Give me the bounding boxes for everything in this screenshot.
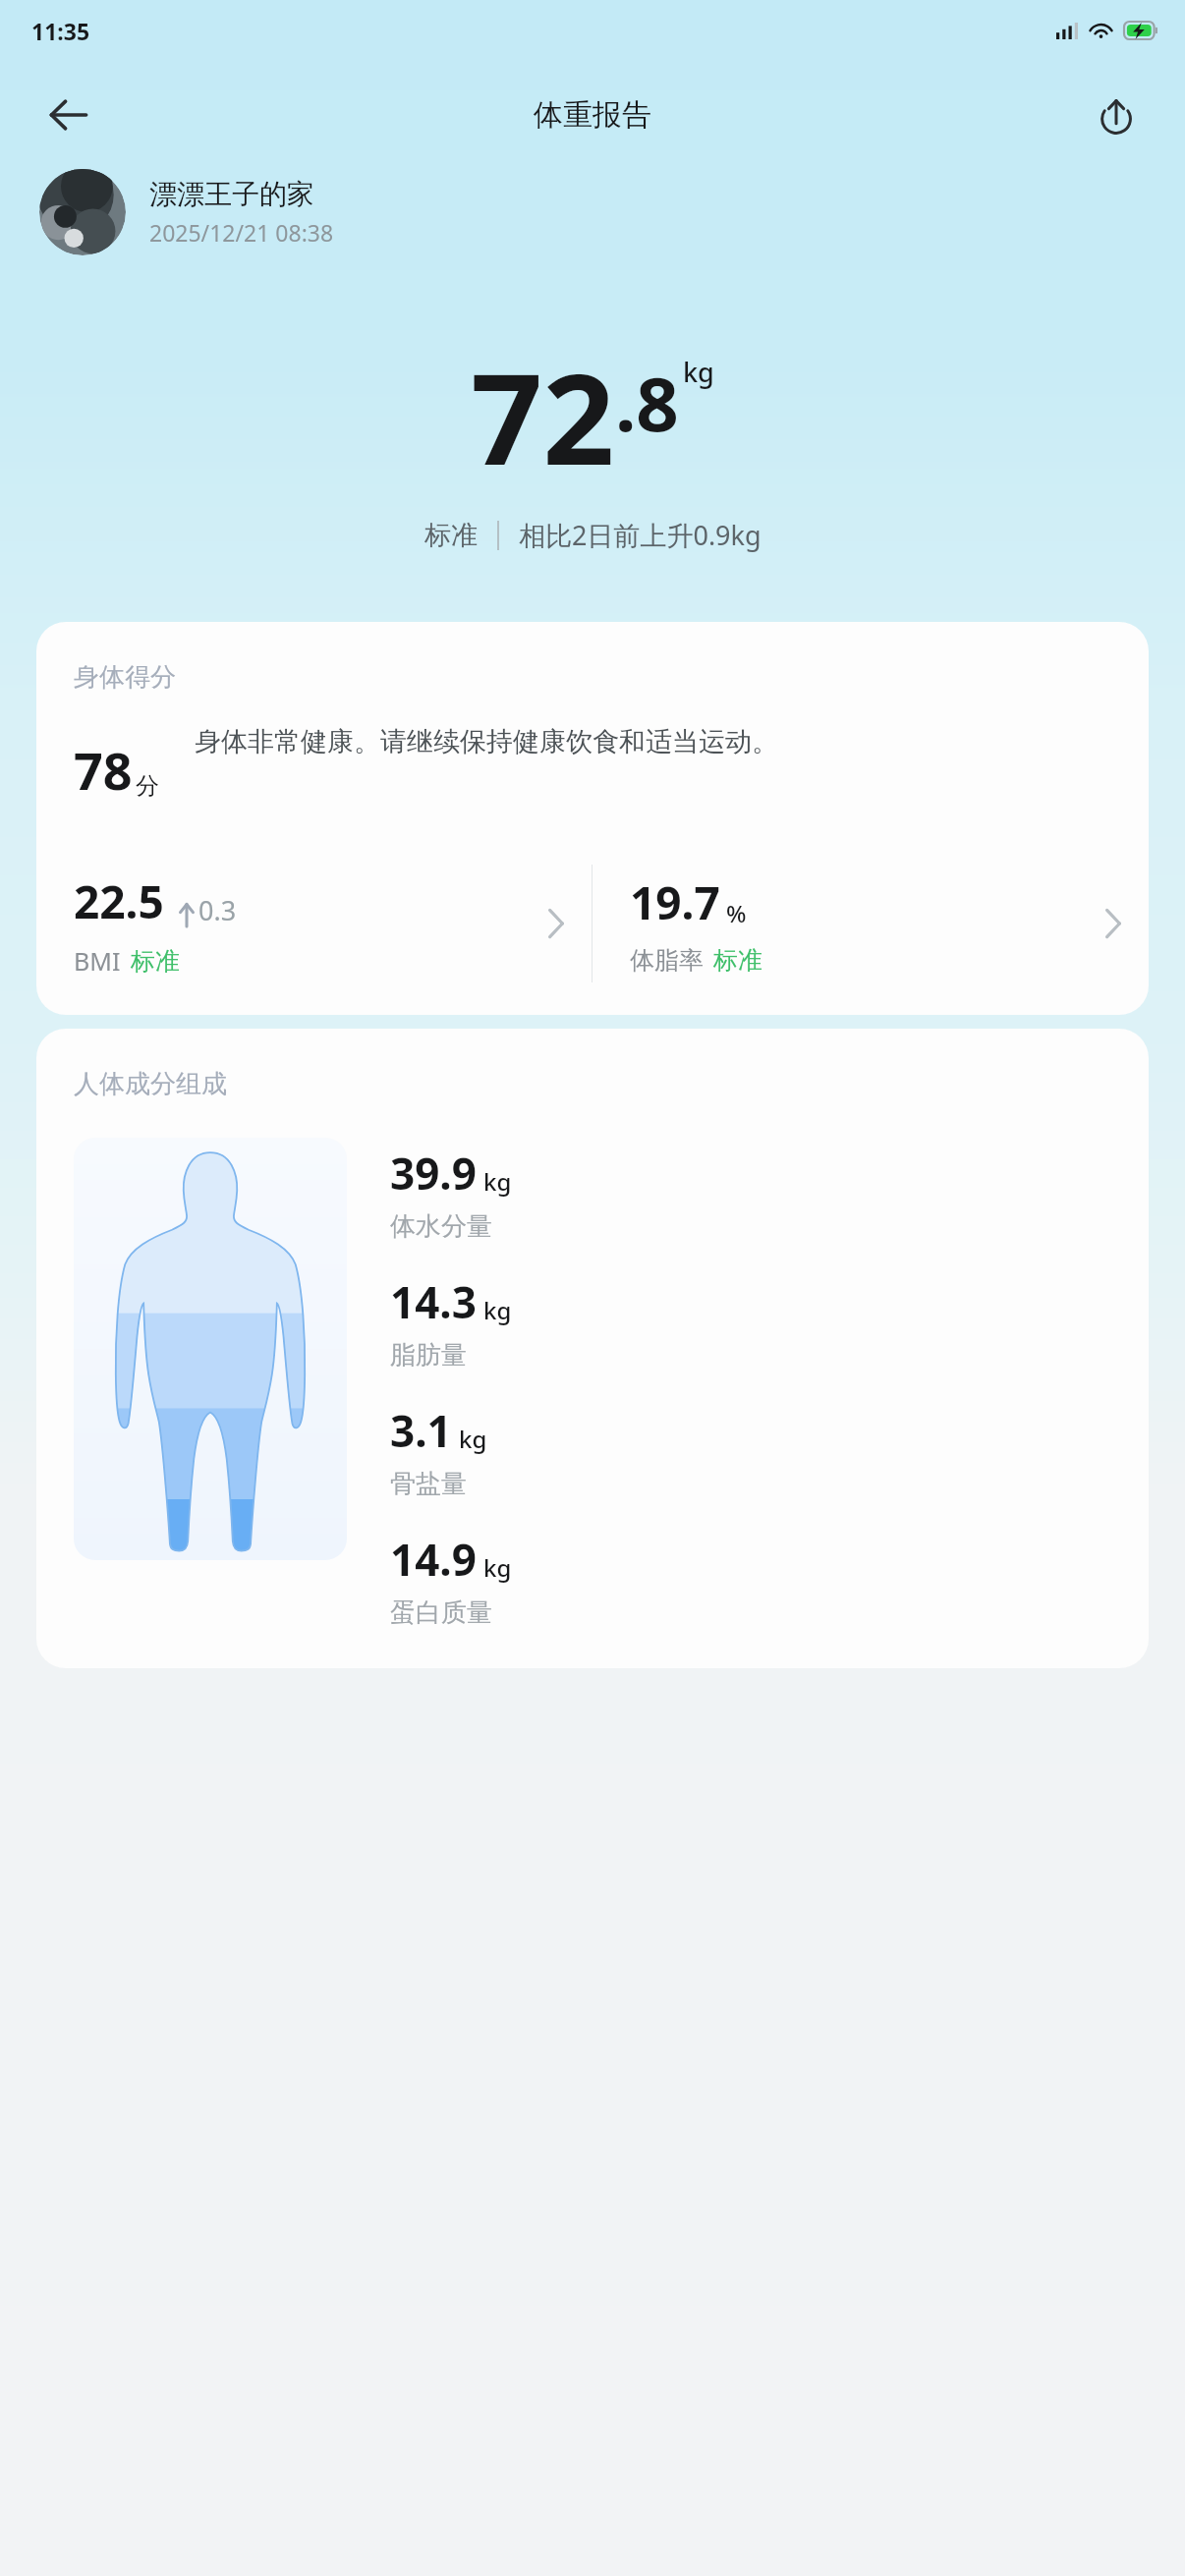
staticText: 体脂率 <box>630 945 704 976</box>
staticText: BMI <box>74 944 121 978</box>
staticText: 0.3 <box>198 892 237 928</box>
staticText: 体水分量 <box>390 1210 492 1243</box>
staticText: 2025/12/21 08:38 <box>149 217 334 248</box>
staticText: kg <box>459 1423 487 1455</box>
staticText: .8 <box>615 352 679 454</box>
staticText: 分 <box>136 771 159 801</box>
staticText: kg <box>483 1294 512 1326</box>
staticText: 体重报告 <box>534 96 651 134</box>
staticText: 19.7 <box>630 871 720 933</box>
staticText: kg <box>483 1165 512 1198</box>
staticText: 78 <box>74 735 133 805</box>
staticText: 3.1 <box>390 1401 452 1460</box>
staticText: 身体非常健康。请继续保持健康饮食和适当运动。 <box>195 725 778 758</box>
staticText: 39.9 <box>390 1144 477 1203</box>
staticText: 脂肪量 <box>390 1339 467 1372</box>
staticText: % <box>726 897 747 929</box>
staticText: 身体得分 <box>74 661 176 694</box>
staticText: 14.9 <box>390 1530 477 1589</box>
button[interactable]: Back <box>33 80 104 150</box>
staticText: 标准 <box>424 519 478 552</box>
staticText: 22.5 <box>74 870 164 932</box>
staticText: 14.3 <box>390 1272 477 1331</box>
staticText: kg <box>483 1551 512 1584</box>
button[interactable]: Share <box>1081 80 1152 150</box>
staticText: 骨盐量 <box>390 1468 467 1500</box>
staticText: 11:35 <box>31 16 90 46</box>
staticText: 相比2日前上升0.9kg <box>519 517 762 553</box>
button[interactable]: 19.7 <box>592 850 1149 997</box>
staticText: kg <box>683 354 714 390</box>
staticText: 72 <box>471 330 615 501</box>
staticText: 标准 <box>131 946 180 977</box>
button[interactable]: 22.5 <box>36 850 592 997</box>
staticText: 漂漂王子的家 <box>149 177 314 211</box>
button[interactable]: 漂漂王子的家 <box>39 169 1146 255</box>
staticText: 蛋白质量 <box>390 1596 492 1629</box>
staticText: 标准 <box>713 945 762 976</box>
staticText: 人体成分组成 <box>74 1068 227 1100</box>
